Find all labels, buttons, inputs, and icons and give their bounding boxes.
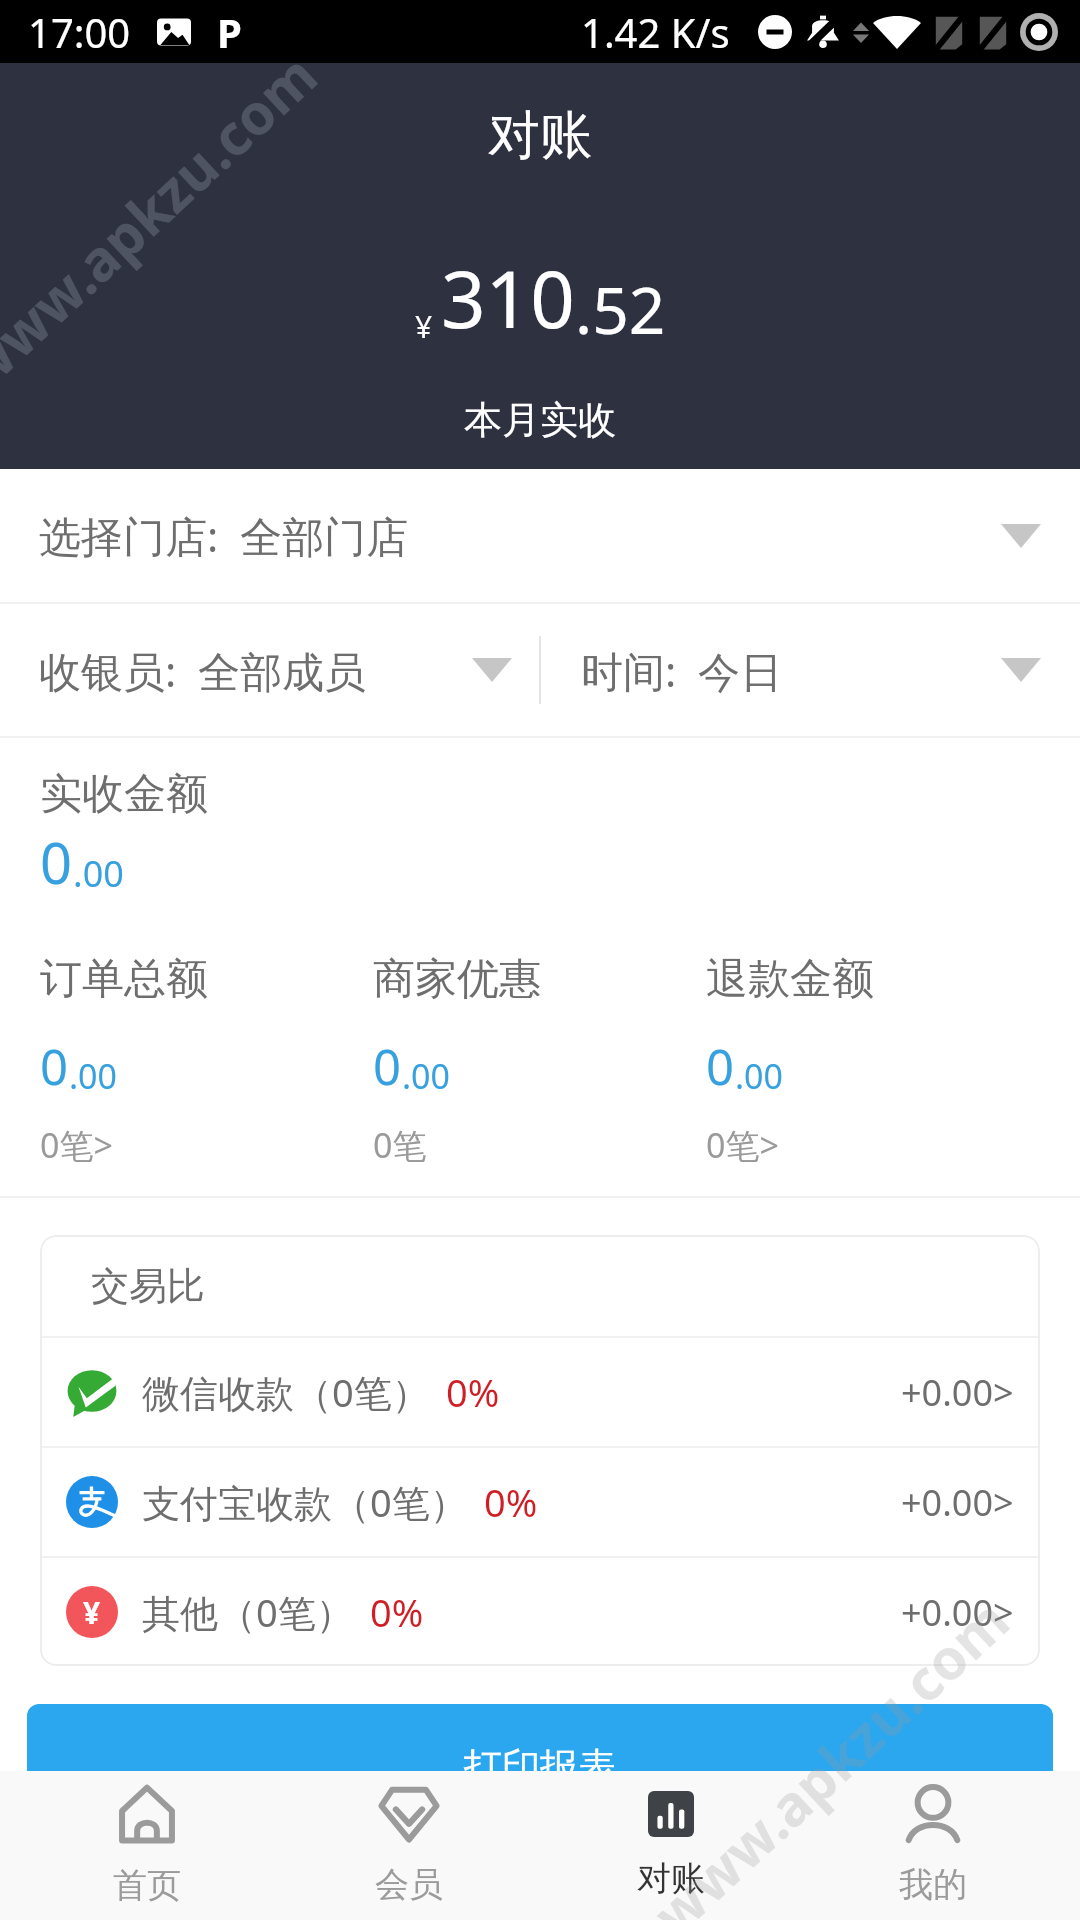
staticText: .00 <box>735 1053 784 1099</box>
staticText: +0.00> <box>901 1478 1014 1527</box>
staticText: ¥ <box>83 1592 101 1633</box>
button[interactable]: 商家优惠 <box>373 953 706 1168</box>
staticText: 0% <box>484 1476 538 1528</box>
staticText: .00 <box>73 849 124 898</box>
staticText: .00 <box>69 1053 118 1099</box>
staticText: www.apkzu.com <box>0 36 332 406</box>
other: 我的 <box>906 1785 960 1843</box>
staticText: 本月实收 <box>464 396 616 444</box>
staticText: 商家优惠 <box>373 953 541 1006</box>
button[interactable]: 订单总额 <box>40 953 373 1168</box>
staticText: 支付宝收款（0笔） <box>142 1476 468 1528</box>
button[interactable]: 支付宝 <box>40 1448 1040 1556</box>
staticText: 0 <box>373 1033 402 1100</box>
button[interactable]: 首页 <box>16 1771 278 1920</box>
staticText: 17:00 <box>28 5 131 59</box>
other: 会员 <box>379 1785 439 1843</box>
staticText: 选择门店: 全部门店 <box>39 507 409 564</box>
staticText: 订单总额 <box>40 953 208 1006</box>
other: 对账 <box>648 1791 694 1837</box>
staticText: 0笔> <box>40 1122 113 1168</box>
staticText: 收银员: 全部成员 <box>39 642 367 699</box>
staticText: 打印报表 <box>464 1743 616 1791</box>
button[interactable]: 收银员: 全部成员 <box>0 604 539 736</box>
staticText: P <box>217 5 242 59</box>
staticText: 对账 <box>488 103 592 169</box>
other: 展开 <box>1001 658 1041 682</box>
button[interactable]: 退款金额 <box>706 953 1040 1168</box>
staticText: 首页 <box>113 1864 181 1907</box>
other: 微信 <box>66 1366 118 1418</box>
staticText: 0笔 <box>373 1122 427 1168</box>
staticText: +0.00> <box>901 1368 1014 1417</box>
staticText: 310 <box>441 245 575 351</box>
staticText: 0 <box>706 1033 735 1100</box>
staticText: .00 <box>402 1053 451 1099</box>
button[interactable]: 我的 <box>802 1771 1064 1920</box>
staticText: 0笔> <box>706 1122 779 1168</box>
staticText: 会员 <box>375 1863 443 1906</box>
other: 支付宝 <box>66 1476 118 1528</box>
staticText: 我的 <box>899 1863 967 1906</box>
staticText: .52 <box>575 266 666 353</box>
staticText: 交易比 <box>91 1262 205 1310</box>
staticText: 其他（0笔） <box>142 1586 354 1638</box>
staticText: 微信收款（0笔） <box>142 1366 430 1418</box>
button[interactable]: 打印报表 <box>27 1704 1053 1814</box>
staticText: www.apkzu.com <box>636 1581 1024 1920</box>
button[interactable]: 微信 <box>40 1338 1040 1446</box>
staticText: 退款金额 <box>706 953 874 1006</box>
staticText: 0% <box>370 1586 424 1638</box>
other: 展开 <box>472 658 512 682</box>
staticText: +0.00> <box>901 1588 1014 1637</box>
staticText: 对账 <box>637 1857 705 1900</box>
button[interactable]: 选择门店: 全部门店 <box>0 469 1080 602</box>
staticText: ¥ <box>415 306 433 347</box>
other: 首页 <box>118 1784 176 1844</box>
staticText: 0% <box>446 1366 500 1418</box>
other: 其他 <box>66 1586 118 1638</box>
staticText: 1.42 K/s <box>581 5 730 59</box>
button[interactable]: 会员 <box>278 1771 540 1920</box>
staticText: 0 <box>40 824 73 900</box>
button[interactable]: 其他 <box>40 1558 1040 1666</box>
button[interactable]: 对账 <box>540 1771 802 1920</box>
staticText: 实收金额 <box>40 768 208 821</box>
staticText: 时间: 今日 <box>581 642 783 699</box>
button[interactable]: 时间: 今日 <box>541 604 1080 736</box>
other: 展开 <box>1001 524 1041 548</box>
staticText: 0 <box>40 1033 69 1100</box>
